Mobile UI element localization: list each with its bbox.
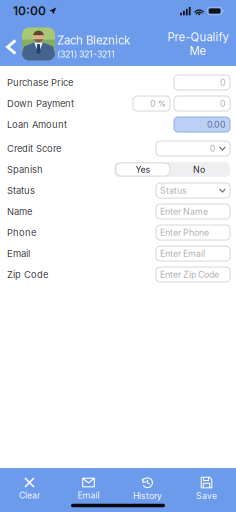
staticText: Zach Bleznick [57, 33, 130, 47]
button[interactable]: Pre-Qualify [164, 24, 232, 64]
button[interactable]: Yes [116, 163, 170, 176]
staticText: 0 [220, 77, 226, 88]
button[interactable]: Clear [0, 474, 59, 504]
staticText: No [193, 164, 205, 175]
staticText: 0.00 [207, 119, 226, 130]
staticText: Enter Phone [160, 227, 209, 238]
staticText: (321) 321-3211 [57, 49, 115, 60]
button[interactable]: Save [177, 474, 236, 504]
staticText: Save [196, 490, 217, 501]
staticText: Spanish [7, 164, 43, 175]
staticText: % [156, 99, 166, 108]
button[interactable]: No [170, 163, 228, 176]
staticText: Credit Score [7, 143, 61, 154]
staticText: 0 [150, 98, 156, 109]
staticText: Clear [19, 490, 40, 500]
staticText: Yes [135, 164, 150, 175]
staticText: Enter Email [160, 248, 205, 259]
staticText: Down Payment [7, 98, 74, 109]
button[interactable]: Back [1, 21, 22, 67]
staticText: Status [7, 185, 35, 196]
staticText: Status [160, 185, 187, 196]
staticText: Email [7, 248, 30, 259]
staticText: Loan Amount [7, 119, 67, 130]
button[interactable]: History [118, 474, 177, 504]
staticText: Me [189, 44, 206, 58]
staticText: History [133, 490, 162, 501]
button[interactable]: Email [59, 474, 118, 504]
staticText: Phone [7, 227, 36, 238]
staticText: Purchase Price [7, 77, 73, 88]
staticText: 0 [210, 143, 216, 154]
staticText: Enter Zip Code [160, 269, 219, 280]
staticText: 0 [220, 98, 226, 109]
staticText: 10:00 [13, 4, 46, 18]
staticText: Enter Name [160, 206, 208, 217]
staticText: Email [77, 490, 99, 500]
staticText: Name [7, 206, 32, 217]
staticText: Zip Code [7, 269, 48, 280]
staticText: Pre-Qualify [167, 30, 228, 44]
